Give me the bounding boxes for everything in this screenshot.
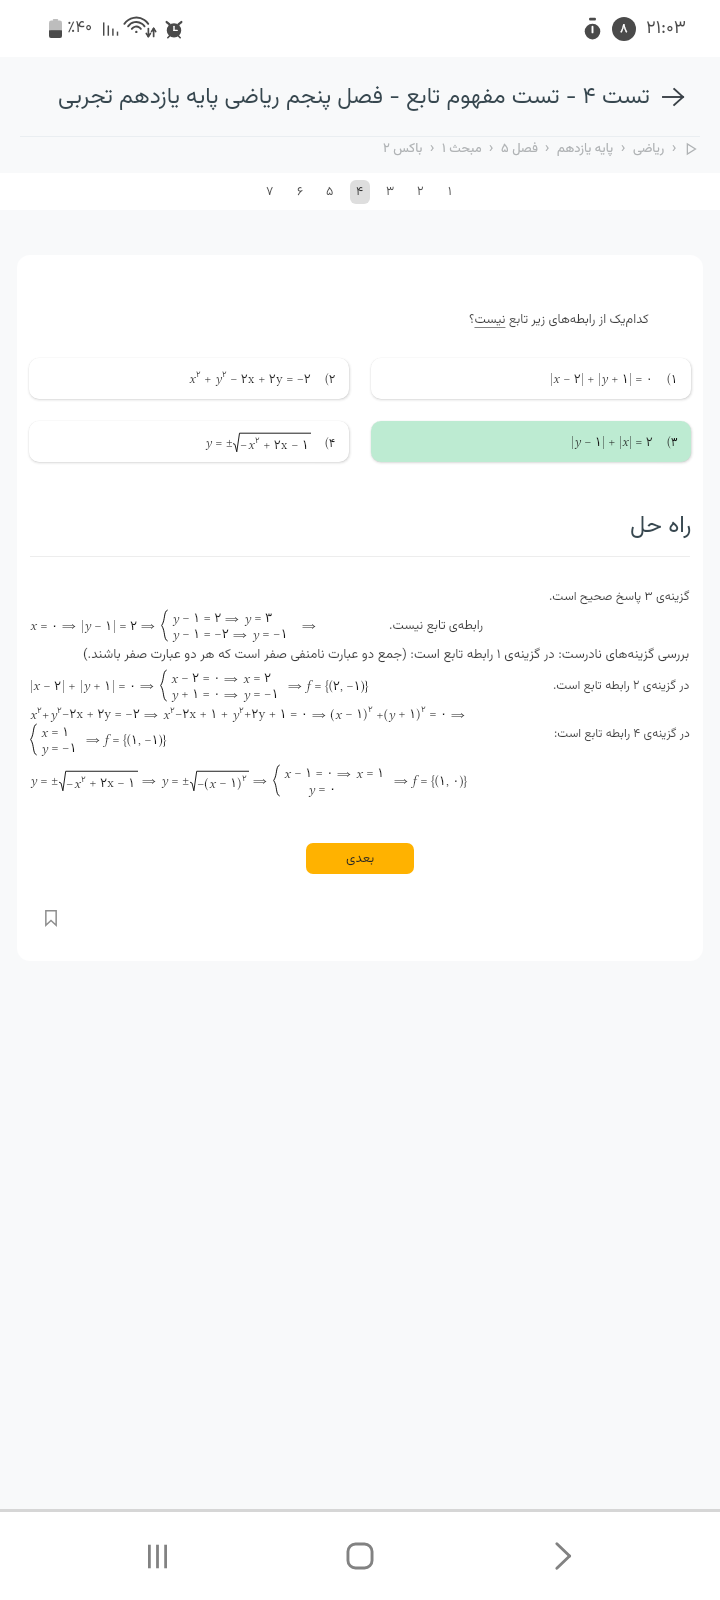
staticText: = ۲ (116, 618, 141, 634)
button[interactable]: y (29, 421, 349, 462)
staticText: y (388, 707, 395, 722)
staticText: y (84, 618, 91, 633)
staticText: | (571, 434, 574, 449)
button[interactable]: x (29, 358, 349, 399)
staticText: | (112, 678, 115, 693)
staticText: x (171, 671, 178, 686)
staticText: ⇒ (233, 627, 248, 642)
staticText: ۲ (37, 705, 42, 715)
button[interactable]: | (371, 421, 691, 462)
staticText: تست ۴ - تست مفهوم تابع - فصل پنجم ریاضی … (58, 79, 650, 115)
staticText: ۷ (266, 182, 274, 202)
staticText: پایه یازدهم (557, 139, 614, 159)
staticText: ۲ (417, 182, 424, 202)
staticText: + (605, 434, 619, 449)
staticText: | (629, 434, 632, 449)
button[interactable]: ۲ (410, 180, 430, 204)
staticText: در گزینه‌ی ۴ رابطه تابع است: (554, 724, 690, 743)
staticText: بررسی گزینه‌های نادرست: در گزینه‌ی ۱ راب… (83, 644, 690, 665)
button[interactable]: Bookmark (38, 905, 64, 931)
staticText: y (83, 678, 90, 693)
staticText: y (601, 371, 608, 386)
staticText: x (30, 707, 37, 722)
button[interactable]: ۷ (260, 180, 280, 204)
staticText: y (574, 434, 581, 449)
staticText: ⇒ (62, 618, 77, 633)
staticText: y (244, 611, 251, 626)
staticText: | (550, 371, 553, 386)
staticText: x (553, 371, 560, 386)
button[interactable]: Recent apps (128, 1527, 186, 1585)
staticText: = ۰ (37, 618, 62, 634)
staticText: | (30, 678, 33, 693)
staticText: ۲ (368, 704, 373, 714)
staticText: x (189, 371, 196, 386)
staticText: y (172, 611, 179, 626)
button[interactable]: ۶ (290, 180, 310, 204)
staticText: = −۲ (283, 371, 311, 386)
button[interactable]: ۱ (440, 180, 460, 204)
staticText: ۳ (386, 182, 395, 202)
button[interactable]: ۴ (350, 180, 370, 204)
staticText: = ۲ (250, 670, 272, 686)
staticText: | (629, 371, 632, 386)
staticText: + ۲x (86, 775, 114, 791)
button[interactable]: Back (534, 1527, 592, 1585)
staticText: y (243, 687, 250, 702)
staticText: x (622, 434, 629, 449)
staticText: + ۱) (395, 706, 421, 722)
staticText: + (584, 371, 598, 386)
staticText: −۲x + ۲y = −۲ (62, 706, 144, 722)
staticText: مبحث ۱ (442, 139, 482, 159)
staticText: y (276, 371, 283, 386)
staticText: کدام‌یک از رابطه‌های زیر تابع نیست؟ (469, 310, 649, 330)
button[interactable]: Back (657, 81, 689, 113)
button[interactable]: بعدی (306, 843, 414, 874)
button[interactable]: ۳ (380, 180, 400, 204)
staticText: y (161, 773, 168, 788)
staticText: y (41, 741, 48, 756)
staticText: ‹ (430, 138, 435, 160)
staticText: − ۲ (560, 371, 581, 386)
button[interactable]: ۵ (320, 180, 340, 204)
staticText: ‹ (621, 138, 626, 160)
staticText: +( (373, 707, 388, 722)
staticText: − ۱ (91, 618, 113, 634)
staticText: ۲ (421, 704, 426, 714)
staticText: x (284, 766, 291, 781)
staticText: x (335, 707, 342, 722)
staticText: y (215, 371, 222, 386)
staticText: +۲y + ۱ = ۰ (244, 706, 312, 722)
staticText: ( (327, 707, 335, 722)
staticText: ‹ (672, 138, 677, 160)
staticText: ۸ (620, 19, 628, 39)
staticText: x (74, 776, 81, 791)
staticText: | (602, 434, 605, 449)
staticText: x (243, 671, 250, 686)
staticText: در گزینه‌ی ۲ رابطه تابع است. (553, 676, 690, 695)
staticText: − ۱ = −۲ (179, 626, 233, 642)
staticText: y (308, 782, 315, 797)
staticText: − ۲ (40, 678, 62, 694)
staticText: + (201, 371, 215, 386)
staticText: ۲ (81, 774, 86, 784)
button[interactable]: Home (331, 1527, 389, 1585)
staticText: ۴ (356, 182, 364, 202)
staticText: = ۱ (363, 765, 385, 781)
staticText: ⇒ (253, 773, 268, 788)
staticText: = ۳ (251, 610, 273, 626)
staticText: f (306, 678, 311, 693)
staticText: ۵ (326, 182, 334, 202)
staticText: − ۱ (114, 775, 136, 791)
staticText: ⇒ (224, 687, 239, 702)
staticText: y (30, 773, 37, 788)
staticText: + (65, 678, 80, 693)
button[interactable]: | (371, 358, 691, 399)
staticText: ۲ (242, 773, 247, 783)
staticText: ریاضی (633, 139, 665, 159)
staticText: ⇒ (140, 678, 155, 693)
